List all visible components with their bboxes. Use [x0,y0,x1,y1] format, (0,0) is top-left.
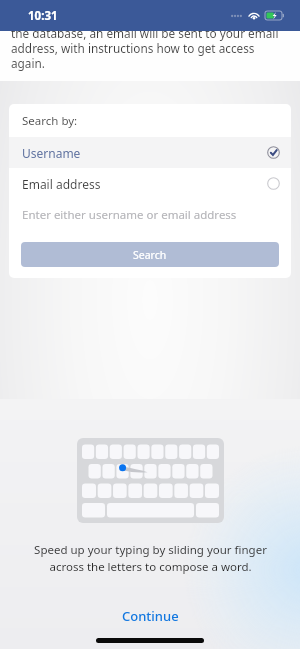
staticText: Continue [122,607,179,625]
staticText: the database, an email will be sent to y… [11,25,288,71]
button[interactable]: Search [21,242,279,267]
button[interactable]: Enter either username or email address [9,199,291,231]
staticText: Enter either username or email address [22,207,237,223]
button[interactable]: Email address [9,168,291,199]
staticText: 10:31 [28,8,58,24]
staticText: Username [22,145,81,161]
staticText: Email address [22,176,101,192]
staticText: Search [133,248,167,262]
button[interactable]: Continue [102,604,199,628]
staticText: Speed up your typing by sliding your fin… [34,542,267,574]
button[interactable]: Username [9,137,291,168]
staticText: Search by: [22,113,78,129]
